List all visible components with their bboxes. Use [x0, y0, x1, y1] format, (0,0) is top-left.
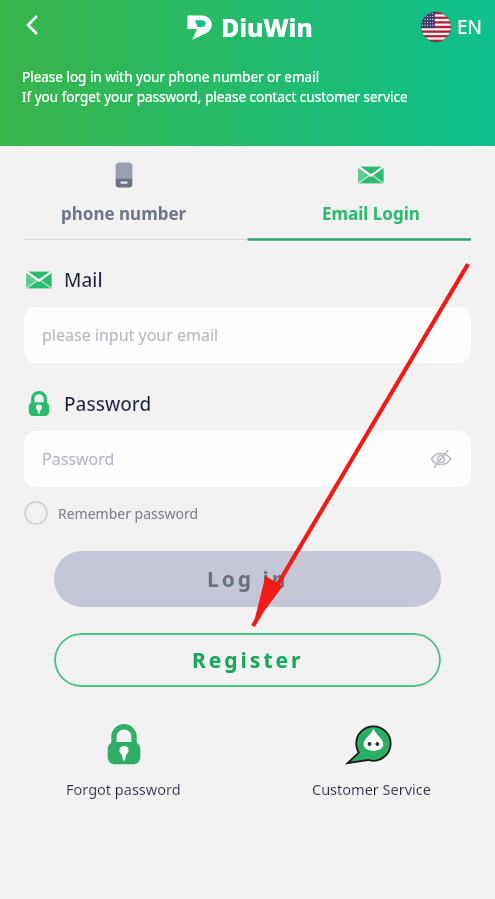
staticText: Register: [192, 646, 304, 675]
staticText: Please log in with your phone number or …: [22, 68, 320, 86]
staticText: If you forget your password, please cont…: [22, 88, 408, 106]
staticText: EN: [457, 14, 483, 40]
button[interactable]: Back: [8, 0, 56, 48]
staticText: Remember password: [58, 504, 199, 523]
staticText: Mail: [64, 267, 103, 293]
button[interactable]: Show password: [423, 441, 459, 477]
staticText: Email Login: [322, 202, 420, 225]
button[interactable]: Forgot password: [62, 717, 185, 803]
button[interactable]: Register: [54, 633, 441, 687]
button[interactable]: Remember password: [24, 501, 199, 525]
staticText: Log in: [207, 565, 289, 594]
button[interactable]: Email Login: [247, 146, 495, 238]
staticText: DiuWin: [221, 10, 313, 44]
button[interactable]: phone number: [0, 146, 247, 238]
staticText: Forgot password: [66, 779, 181, 799]
staticText: phone number: [61, 202, 187, 225]
button[interactable]: please input your email: [24, 307, 471, 363]
staticText: please input your email: [42, 324, 219, 346]
staticText: Customer Service: [312, 779, 431, 799]
button[interactable]: Password: [24, 431, 471, 487]
button[interactable]: Customer Service: [308, 717, 435, 803]
button[interactable]: Language EN: [421, 12, 483, 42]
staticText: Password: [64, 391, 152, 417]
staticText: Password: [42, 448, 115, 470]
button[interactable]: Log in: [54, 551, 441, 607]
